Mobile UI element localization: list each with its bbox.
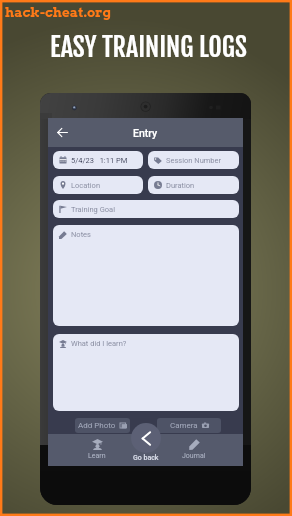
button[interactable]: Duration (148, 176, 239, 194)
staticText: Training Goal (71, 205, 115, 214)
staticText: hack-cheat.org (5, 4, 111, 20)
staticText: Location (71, 181, 101, 190)
button[interactable]: Location (53, 176, 143, 194)
button[interactable]: Notes (53, 225, 239, 326)
staticText: Entry (133, 127, 158, 139)
staticText: Camera (170, 421, 198, 430)
button[interactable]: 5/4/23 1:11 PM (53, 151, 143, 169)
button[interactable]: Learn (77, 434, 117, 466)
button[interactable]: Session Number (148, 151, 239, 169)
button[interactable]: What did I learn? (53, 334, 239, 411)
staticText: 5/4/23 1:11 PM (71, 156, 128, 165)
staticText: Journal (182, 452, 206, 460)
staticText: EASY TRAINING LOGS (50, 31, 248, 64)
staticText: What did I learn? (71, 339, 127, 348)
staticText: Session Number (166, 156, 222, 165)
staticText: Duration (166, 181, 195, 190)
staticText: Go back (133, 454, 159, 462)
button[interactable]: Add Photo (75, 418, 130, 433)
button[interactable]: Go back (131, 423, 161, 453)
staticText: Learn (88, 452, 106, 460)
button[interactable]: Back (52, 122, 73, 143)
staticText: Add Photo (78, 421, 116, 430)
button[interactable]: Training Goal (53, 200, 239, 218)
staticText: Notes (71, 230, 91, 239)
button[interactable]: Journal (174, 434, 214, 466)
button[interactable]: Camera (157, 418, 221, 433)
